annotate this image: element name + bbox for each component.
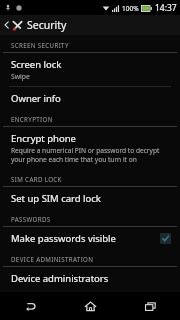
staticText: 100% bbox=[122, 4, 139, 13]
staticText: Security bbox=[27, 18, 67, 32]
staticText: Screen lock bbox=[11, 58, 62, 71]
staticText: Make passwords visible bbox=[11, 232, 160, 245]
button[interactable]: Screen lock bbox=[0, 53, 180, 86]
button[interactable]: Home bbox=[60, 292, 120, 320]
staticText: Owner info bbox=[11, 92, 61, 105]
staticText: 14:37 bbox=[155, 2, 177, 14]
button[interactable]: Encrypt phone bbox=[0, 127, 180, 169]
staticText: Device administrators bbox=[11, 272, 109, 285]
staticText: Swipe bbox=[11, 72, 30, 81]
button[interactable]: Back bbox=[0, 292, 60, 320]
staticText: Encrypt phone bbox=[11, 132, 76, 145]
button[interactable]: Owner info bbox=[0, 87, 180, 109]
staticText: ENCRYPTION bbox=[11, 115, 53, 123]
button[interactable]: Navigate up bbox=[0, 15, 180, 35]
button[interactable]: Recent apps bbox=[120, 292, 180, 320]
staticText: PASSWORDS bbox=[11, 215, 51, 223]
staticText: SCREEN SECURITY bbox=[11, 41, 69, 49]
staticText: SIM CARD LOCK bbox=[11, 175, 62, 183]
staticText: DEVICE ADMINISTRATION bbox=[11, 255, 94, 263]
staticText: Require a numerical PIN or password to d… bbox=[11, 146, 160, 155]
button[interactable]: Set up SIM card lock bbox=[0, 187, 180, 209]
staticText: Set up SIM card lock bbox=[11, 192, 101, 205]
button[interactable]: Device administrators bbox=[0, 267, 180, 289]
button[interactable]: Make passwords visible bbox=[0, 227, 180, 249]
staticText: your phone each time that you turn it on bbox=[11, 155, 137, 164]
